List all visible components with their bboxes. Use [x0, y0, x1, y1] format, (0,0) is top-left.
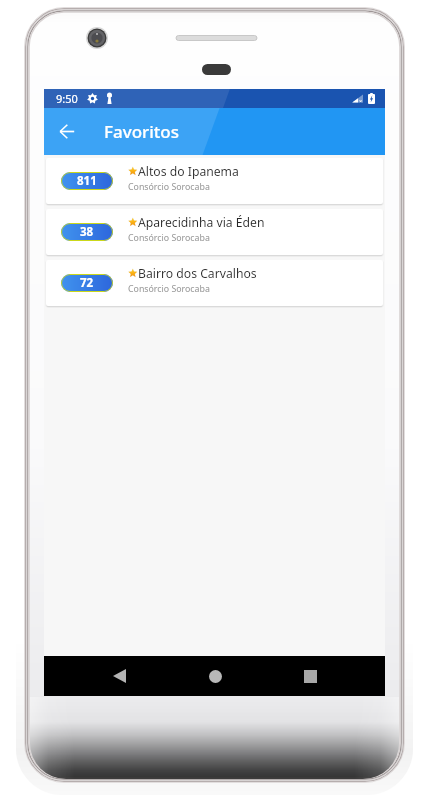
- button[interactable]: Back: [44, 108, 90, 155]
- staticText: Altos do Ipanema: [138, 163, 239, 180]
- staticText: Aparecidinha via Éden: [138, 214, 265, 231]
- staticText: Consórcio Sorocaba: [128, 181, 210, 193]
- button[interactable]: 38: [46, 209, 383, 255]
- button[interactable]: Back: [99, 656, 139, 696]
- button[interactable]: Recents: [290, 656, 330, 696]
- button[interactable]: Home: [195, 656, 235, 696]
- staticText: 38: [80, 224, 94, 240]
- button[interactable]: 72: [46, 260, 383, 306]
- staticText: Favoritos: [104, 120, 179, 143]
- staticText: 72: [80, 275, 94, 291]
- staticText: Consórcio Sorocaba: [128, 283, 210, 295]
- button[interactable]: 811: [46, 158, 383, 204]
- staticText: Consórcio Sorocaba: [128, 232, 210, 244]
- staticText: 9:50: [56, 91, 78, 106]
- staticText: 811: [77, 173, 97, 189]
- staticText: Bairro dos Carvalhos: [138, 265, 257, 282]
